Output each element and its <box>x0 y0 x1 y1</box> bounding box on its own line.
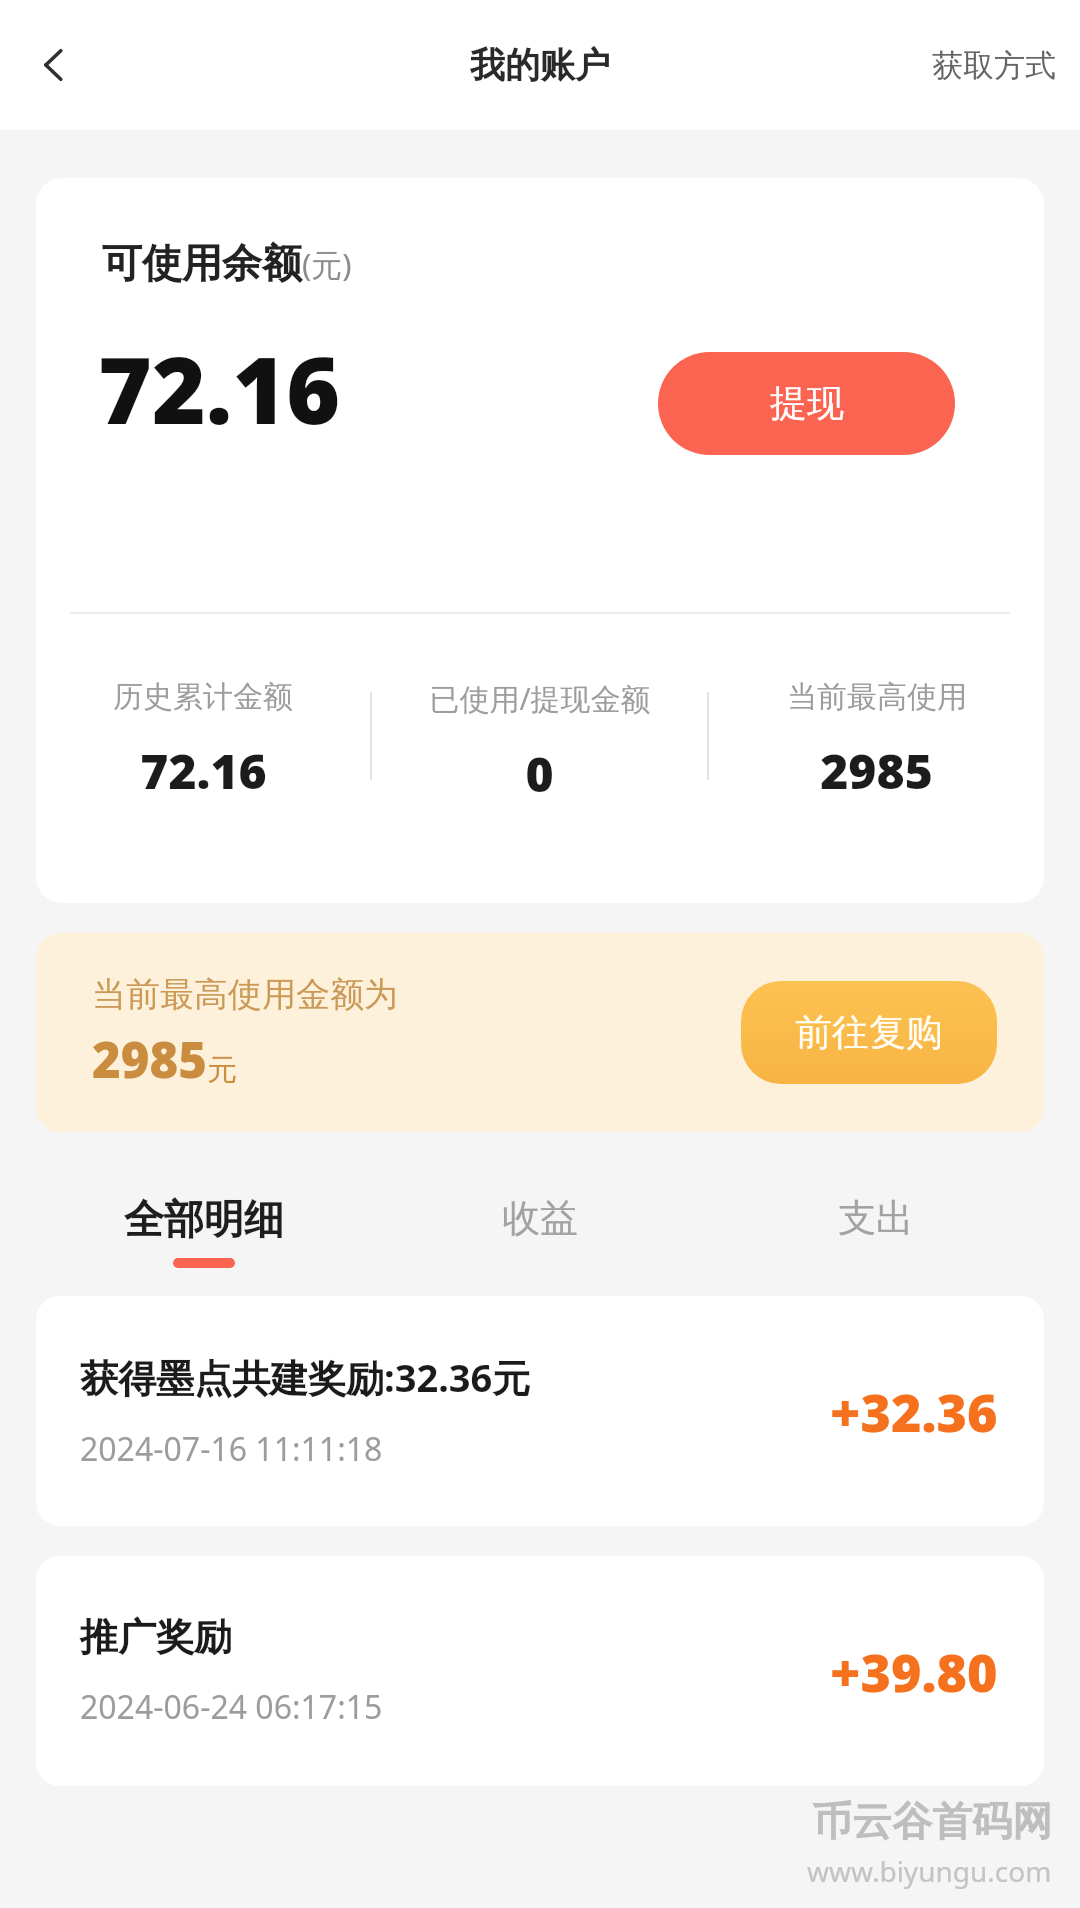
staticText: 2985 <box>92 1026 207 1093</box>
staticText: 元 <box>207 1051 237 1089</box>
staticText: www.biyungu.com <box>807 1852 1052 1890</box>
staticText: 支出 <box>838 1194 914 1242</box>
staticText: 前往复购 <box>795 1009 943 1056</box>
staticText: 全部明细 <box>124 1194 284 1244</box>
staticText: 2985 <box>820 738 933 803</box>
staticText: 当前最高使用金额为 <box>92 973 398 1016</box>
staticText: +32.36 <box>830 1376 998 1447</box>
staticText: 可使用余额 <box>102 238 302 288</box>
button[interactable]: 前往复购 <box>741 981 997 1084</box>
staticText: 2024-06-24 06:17:15 <box>80 1685 383 1729</box>
button[interactable]: 支出 <box>708 1188 1044 1272</box>
button[interactable]: 推广奖励 <box>36 1556 1044 1786</box>
staticText: 0 <box>525 741 554 806</box>
button[interactable]: 全部明细 <box>36 1188 372 1274</box>
button[interactable]: 提现 <box>658 352 955 455</box>
staticText: 获取方式 <box>932 46 1056 85</box>
staticText: 72.16 <box>98 326 341 451</box>
staticText: 2024-07-16 11:11:18 <box>80 1427 383 1471</box>
button[interactable]: 获取方式 <box>908 28 1080 103</box>
button[interactable]: Back <box>16 27 92 103</box>
button[interactable]: 获得墨点共建奖励:32.36元 <box>36 1296 1044 1526</box>
staticText: 我的账户 <box>470 43 610 87</box>
staticText: +39.80 <box>830 1636 998 1707</box>
staticText: 已使用/提现金额 <box>429 678 651 719</box>
staticText: (元) <box>302 243 352 285</box>
staticText: 推广奖励 <box>80 1613 232 1661</box>
staticText: 币云谷首码网 <box>812 1796 1052 1846</box>
button[interactable]: 收益 <box>372 1188 708 1272</box>
staticText: 获得墨点共建奖励:32.36元 <box>80 1351 531 1403</box>
staticText: 当前最高使用 <box>787 678 967 716</box>
staticText: 收益 <box>502 1194 578 1242</box>
staticText: 提现 <box>770 380 844 427</box>
staticText: 72.16 <box>140 738 267 803</box>
staticText: 历史累计金额 <box>113 678 293 716</box>
